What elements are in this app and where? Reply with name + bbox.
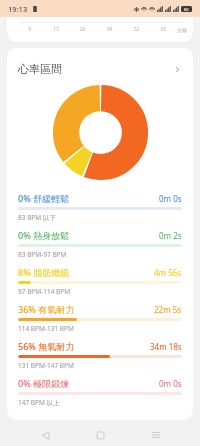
button[interactable]: 心率區間 [7,56,193,82]
staticText: 8% 脂肪燃燒 [18,266,70,278]
staticText: 83 BPM 以下 [18,213,56,222]
staticText: 0m 2s [159,230,182,241]
staticText: 19:13 [8,4,28,14]
button[interactable]: 0% 熱身放鬆 [7,225,193,262]
button[interactable]: 56% 無氧耐力 [7,336,193,373]
staticText: 80 [184,7,189,12]
staticText: 147 BPM 以上 [18,398,60,407]
staticText: 34m 18s [150,341,182,352]
button[interactable]: 0% 舒緩輕鬆 [7,188,193,225]
staticText: 56% 無氧耐力 [18,340,75,352]
staticText: 0m 0s [159,193,182,204]
staticText: 97 BPM-114 BPM [18,287,71,296]
staticText: 0% 舒緩輕鬆 [18,192,70,204]
staticText: 83 BPM-97 BPM [18,250,67,259]
staticText: 65 [150,26,177,33]
staticText: 分鐘 [177,27,187,33]
staticText: 4m 56s [154,267,182,278]
staticText: 0 [17,26,43,33]
staticText: 36% 有氧耐力 [18,303,75,315]
staticText: 0% 熱身放鬆 [18,229,70,241]
staticText: 0% 極限鍛煉 [18,377,70,389]
button[interactable]: 36% 有氧耐力 [7,299,193,336]
staticText: 114 BPM-131 BPM [18,324,74,333]
staticText: 131 BPM-147 BPM [18,361,74,370]
staticText: 52 [123,26,150,33]
button[interactable]: Recent apps [145,424,167,446]
staticText: 心率區間 [18,62,62,76]
button[interactable]: Home [89,424,111,446]
button[interactable]: Back [34,424,56,446]
button[interactable]: 0% 極限鍛煉 [7,373,193,410]
button[interactable]: 8% 脂肪燃燒 [7,262,193,299]
staticText: 13 [43,26,69,33]
staticText: 26 [69,26,96,33]
staticText: 22m 5s [154,304,182,315]
staticText: 39 [96,26,123,33]
other: More [173,65,182,74]
staticText: 0m 0s [159,378,182,389]
